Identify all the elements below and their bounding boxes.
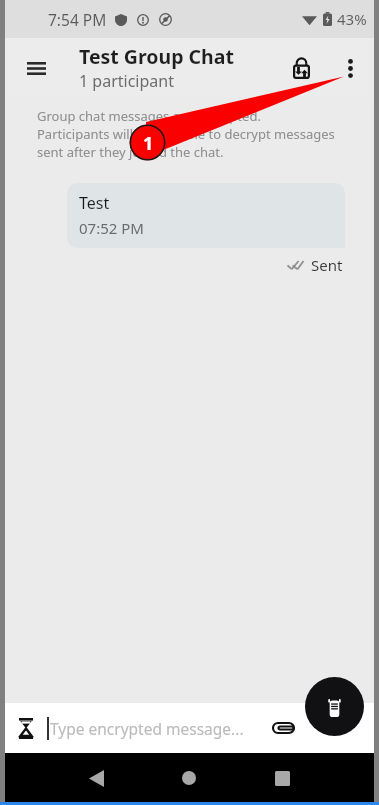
button[interactable]: Back bbox=[73, 755, 119, 801]
staticText: 07:52 PM bbox=[79, 218, 144, 238]
button[interactable]: Test bbox=[67, 183, 345, 248]
staticText: Group chat messages are encrypted. Parti… bbox=[37, 107, 335, 161]
button[interactable]: Push to talk bbox=[305, 677, 364, 736]
staticText: 43% bbox=[337, 9, 367, 29]
button[interactable]: Recent apps bbox=[259, 755, 305, 801]
staticText: 1 bbox=[143, 131, 154, 156]
staticText: Test bbox=[79, 192, 110, 214]
staticText: 1 participant bbox=[79, 70, 174, 92]
button[interactable]: Open navigation menu bbox=[10, 42, 62, 94]
button[interactable]: More options bbox=[332, 50, 368, 86]
staticText: 7:54 PM bbox=[48, 9, 107, 30]
button[interactable]: Attach file bbox=[261, 706, 305, 750]
staticText: Test Group Chat bbox=[79, 43, 234, 70]
staticText: Sent bbox=[311, 255, 343, 275]
button[interactable]: Disappearing messages bbox=[5, 707, 47, 749]
button[interactable]: Encryption settings bbox=[279, 46, 323, 90]
button[interactable]: Home bbox=[166, 755, 212, 801]
staticText: Type encrypted message... bbox=[50, 718, 244, 739]
